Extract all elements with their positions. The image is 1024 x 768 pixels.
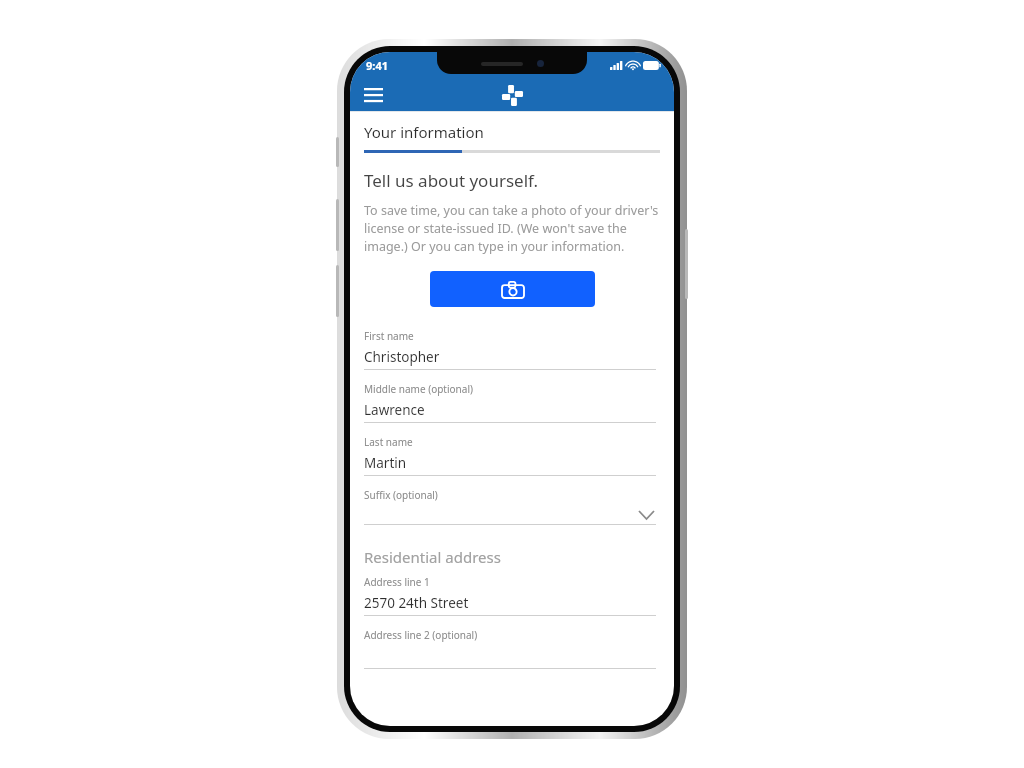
- staticText: Martin: [364, 454, 407, 472]
- staticText: Your information: [364, 122, 484, 142]
- button[interactable]: Last name: [364, 435, 660, 476]
- staticText: Suffix (optional): [364, 488, 438, 502]
- staticText: 2570 24th Street: [364, 594, 469, 612]
- button[interactable]: Suffix dropdown: [364, 488, 660, 525]
- staticText: First name: [364, 329, 414, 343]
- button[interactable]: Middle name (optional): [364, 382, 660, 423]
- staticText: Tell us about yourself.: [364, 169, 539, 192]
- staticText: To save time, you can take a photo of yo…: [364, 202, 660, 255]
- button[interactable]: Address line 2 (optional): [364, 628, 660, 669]
- staticText: Address line 2 (optional): [364, 628, 478, 642]
- staticText: 9:41: [366, 58, 388, 73]
- staticText: Residential address: [364, 547, 501, 567]
- staticText: Christopher: [364, 348, 440, 366]
- button[interactable]: Take photo of ID: [430, 271, 595, 307]
- button[interactable]: Menu: [358, 80, 388, 110]
- staticText: Address line 1: [364, 575, 430, 589]
- button[interactable]: Address line 1: [364, 575, 660, 616]
- button[interactable]: First name: [364, 329, 660, 370]
- staticText: Middle name (optional): [364, 382, 473, 396]
- staticText: Last name: [364, 435, 413, 449]
- staticText: Lawrence: [364, 401, 425, 419]
